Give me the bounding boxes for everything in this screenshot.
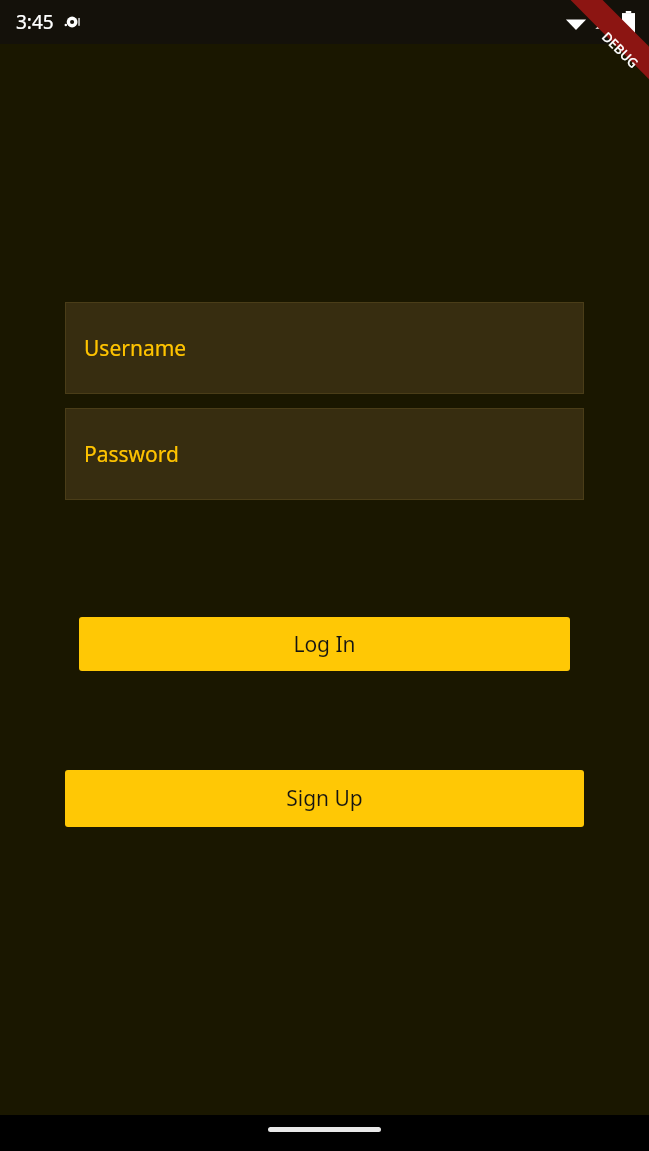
staticText: Sign Up <box>286 784 363 813</box>
staticText: Log In <box>293 630 356 659</box>
button[interactable]: Sign Up <box>65 770 584 827</box>
button[interactable]: Username <box>66 303 583 393</box>
button[interactable]: Password <box>66 409 583 499</box>
staticText: 3:45 <box>16 9 54 35</box>
staticText: Username <box>84 334 187 363</box>
staticText: DEBUG <box>598 28 643 72</box>
staticText: Password <box>84 440 179 469</box>
button[interactable]: Log In <box>79 617 570 671</box>
